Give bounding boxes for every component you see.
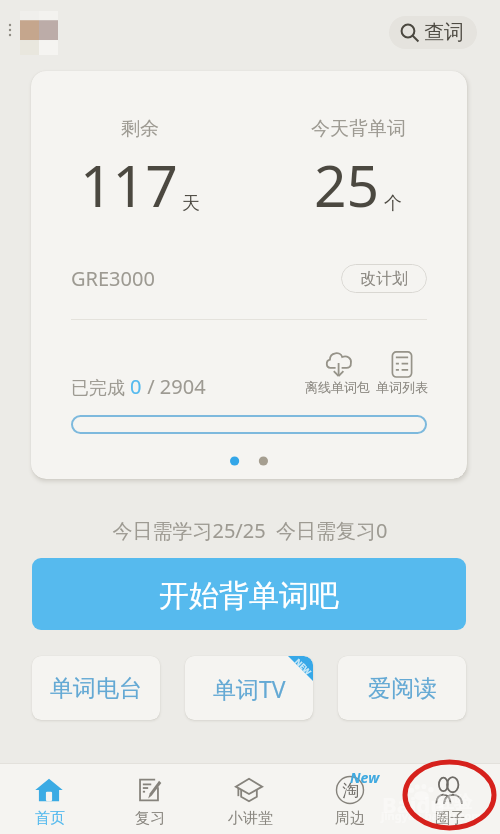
staticText: 今天背单词: [311, 117, 406, 141]
button[interactable]: Class: [200, 776, 300, 828]
staticText: 个: [384, 192, 402, 215]
button[interactable]: Review: [100, 776, 200, 828]
button[interactable]: 单词列表: [376, 350, 428, 395]
button[interactable]: 改计划: [341, 264, 427, 293]
button[interactable]: 开始背单词吧: [32, 558, 466, 630]
staticText: 剩余: [121, 117, 159, 141]
staticText: 开始背单词吧: [159, 577, 339, 615]
button[interactable]: 单词电台: [32, 656, 160, 720]
staticText: 已完成: [71, 375, 130, 400]
staticText: 离线单词包: [305, 379, 370, 395]
staticText: 经验: [436, 791, 472, 814]
staticText: 天: [182, 192, 200, 215]
staticText: GRE3000: [71, 265, 155, 292]
button[interactable]: Home: [0, 776, 100, 828]
button[interactable]: 单词TV: [185, 656, 313, 720]
button[interactable]: 爱阅读: [338, 656, 466, 720]
staticText: 小讲堂: [228, 809, 273, 828]
staticText: 单词列表: [376, 379, 428, 395]
staticText: New: [350, 768, 380, 787]
staticText: NEW: [293, 656, 313, 677]
staticText: 首页: [35, 809, 65, 828]
staticText: Baidu: [382, 789, 445, 819]
staticText: 0: [130, 373, 142, 400]
staticText: 117: [80, 146, 178, 224]
staticText: / 2904: [142, 373, 206, 400]
button[interactable]: Community: [400, 776, 500, 828]
button[interactable]: 离线单词包: [305, 350, 370, 395]
staticText: 周边: [335, 809, 365, 828]
staticText: 淘: [342, 780, 359, 801]
staticText: 单词电台: [50, 674, 142, 703]
staticText: 今日需学习25/25 今日需复习0: [0, 517, 500, 544]
staticText: 单词TV: [213, 673, 286, 704]
staticText: 25: [314, 146, 380, 224]
staticText: 爱阅读: [368, 674, 437, 703]
staticText: 圈子: [435, 809, 465, 828]
staticText: jingyan.baidu.com: [381, 808, 483, 823]
button[interactable]: Store: [300, 776, 400, 828]
staticText: 复习: [135, 809, 165, 828]
staticText: 查词: [424, 20, 464, 45]
staticText: 改计划: [360, 269, 408, 289]
button[interactable]: 查词: [389, 16, 477, 49]
